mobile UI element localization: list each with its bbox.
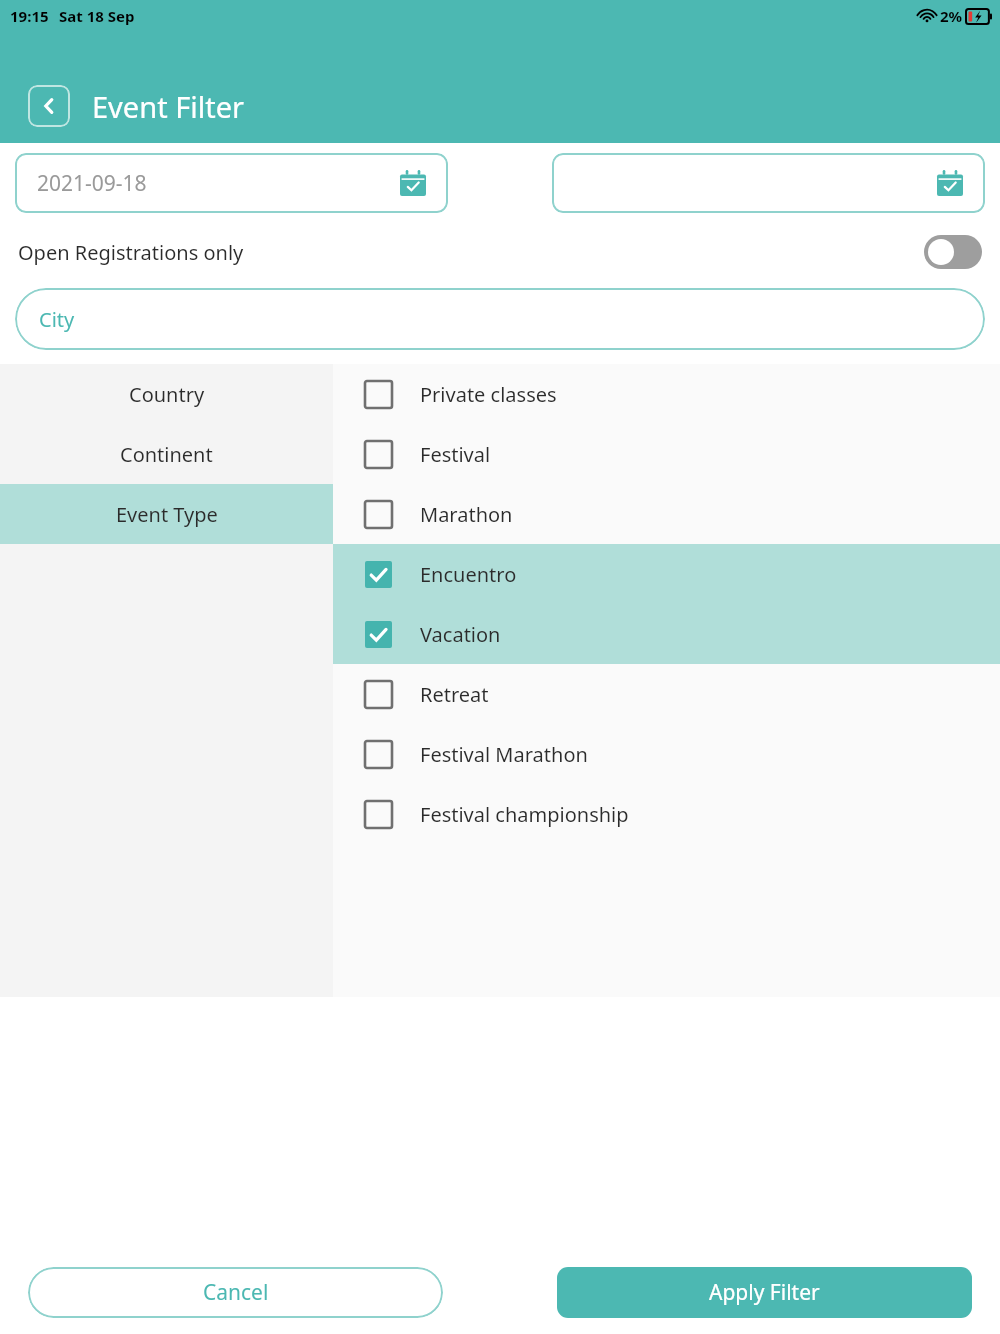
button[interactable]: Encuentro <box>333 544 1000 604</box>
button[interactable] <box>552 153 985 213</box>
staticText: Festival <box>420 441 491 468</box>
staticText: Sat 18 Sep <box>59 6 135 26</box>
button[interactable]: Country <box>0 364 333 424</box>
button[interactable]: Private classes <box>333 364 1000 424</box>
button[interactable]: Vacation <box>333 604 1000 664</box>
staticText: Country <box>129 381 205 408</box>
staticText: Festival championship <box>420 801 629 828</box>
staticText: Open Registrations only <box>18 239 244 266</box>
button[interactable]: Retreat <box>333 664 1000 724</box>
staticText: Apply Filter <box>709 1278 820 1307</box>
button[interactable]: Open Registrations only toggle <box>924 235 982 269</box>
staticText: Continent <box>120 441 213 468</box>
button[interactable]: Continent <box>0 424 333 484</box>
button[interactable]: Festival championship <box>333 784 1000 844</box>
staticText: Cancel <box>203 1278 269 1307</box>
button[interactable]: Festival Marathon <box>333 724 1000 784</box>
staticText: Festival Marathon <box>420 741 588 768</box>
button[interactable]: 2021-09-18 <box>15 153 448 213</box>
staticText: 19:15 <box>10 6 49 26</box>
button[interactable]: Apply Filter <box>557 1267 972 1318</box>
staticText: 2021-09-18 <box>37 169 147 198</box>
staticText: Marathon <box>420 501 513 528</box>
button[interactable]: Cancel <box>28 1267 443 1318</box>
staticText: Private classes <box>420 381 557 408</box>
button[interactable]: Marathon <box>333 484 1000 544</box>
staticText: Retreat <box>420 681 489 708</box>
button[interactable]: Back <box>28 85 70 127</box>
staticText: Event Type <box>116 501 218 528</box>
staticText: 2% <box>940 6 963 26</box>
staticText: Vacation <box>420 621 501 648</box>
staticText: Event Filter <box>92 87 244 126</box>
staticText: City <box>39 306 75 333</box>
button[interactable]: Event Type <box>0 484 333 544</box>
button[interactable]: City <box>15 288 985 350</box>
staticText: Encuentro <box>420 561 517 588</box>
button[interactable]: Festival <box>333 424 1000 484</box>
